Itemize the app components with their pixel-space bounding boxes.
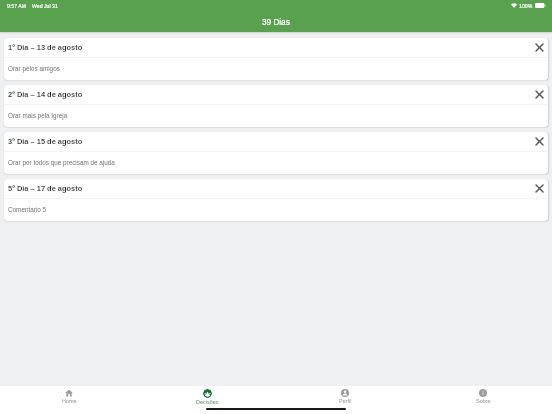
- staticText: Sobre: [476, 398, 491, 404]
- staticText: Orar por todos que precisam de ajuda: [8, 159, 115, 166]
- button[interactable]: Sobre: [414, 386, 552, 414]
- button[interactable]: Fechar: [533, 88, 546, 101]
- staticText: 39 Dias: [262, 18, 290, 27]
- staticText: 1º Dia – 13 de agosto: [8, 43, 83, 51]
- button[interactable]: Fechar: [533, 182, 546, 195]
- staticText: 100%: [519, 3, 533, 9]
- button[interactable]: Fechar: [533, 41, 546, 54]
- button[interactable]: 5º Dia – 17 de agosto: [4, 179, 548, 221]
- staticText: Perfil: [339, 398, 352, 404]
- button[interactable]: 1º Dia – 13 de agosto: [4, 38, 548, 80]
- staticText: Comentario 5: [8, 206, 47, 213]
- button[interactable]: 3º Dia – 15 de agosto: [4, 132, 548, 174]
- button[interactable]: Decisões: [138, 386, 276, 414]
- staticText: Decisões: [196, 399, 219, 405]
- staticText: Orar mais pela Igreja: [8, 112, 68, 119]
- button[interactable]: Home: [0, 386, 138, 414]
- staticText: Home: [62, 398, 77, 404]
- staticText: Wed Jul 31: [32, 3, 58, 9]
- staticText: 2º Dia – 14 de agosto: [8, 90, 83, 98]
- staticText: Orar pelos amigos: [8, 65, 60, 72]
- staticText: 3º Dia – 15 de agosto: [8, 137, 83, 145]
- button[interactable]: Fechar: [533, 135, 546, 148]
- staticText: 5º Dia – 17 de agosto: [8, 184, 83, 192]
- staticText: 9:57 AM: [7, 3, 27, 9]
- button[interactable]: 2º Dia – 14 de agosto: [4, 85, 548, 127]
- button[interactable]: Perfil: [276, 386, 414, 414]
